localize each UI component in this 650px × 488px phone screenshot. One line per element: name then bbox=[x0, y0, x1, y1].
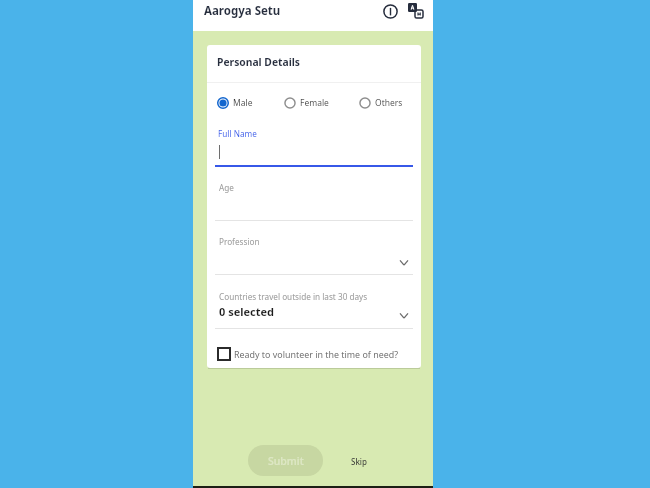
button[interactable]: Male bbox=[217, 97, 253, 109]
button[interactable]: Others bbox=[359, 97, 403, 109]
staticText: Submit bbox=[268, 454, 304, 468]
button[interactable]: Profession bbox=[215, 233, 413, 275]
staticText: Aarogya Setu bbox=[204, 3, 281, 19]
button[interactable]: Information bbox=[380, 1, 401, 22]
staticText: Ready to volunteer in the time of need? bbox=[234, 348, 399, 360]
button[interactable]: Ready to volunteer in the time of need? bbox=[217, 345, 399, 363]
staticText: Skip bbox=[351, 456, 367, 467]
button[interactable]: Full Name bbox=[215, 125, 413, 167]
staticText: Male bbox=[233, 97, 253, 109]
staticText: Female bbox=[300, 97, 329, 109]
staticText: Personal Details bbox=[217, 55, 300, 69]
button[interactable]: Change language bbox=[406, 2, 426, 22]
staticText: Others bbox=[375, 97, 403, 109]
button[interactable]: Female bbox=[284, 97, 329, 109]
button[interactable]: Skip bbox=[345, 452, 373, 471]
button[interactable]: Countries travel outside in last 30 days bbox=[215, 287, 413, 329]
staticText: Full Name bbox=[218, 128, 257, 139]
button[interactable]: Age bbox=[215, 179, 413, 221]
staticText: 0 selected bbox=[219, 304, 275, 319]
staticText: Countries travel outside in last 30 days bbox=[219, 291, 368, 302]
button[interactable]: Submit bbox=[248, 445, 323, 476]
staticText: Profession bbox=[219, 236, 260, 247]
staticText: Age bbox=[219, 182, 234, 193]
